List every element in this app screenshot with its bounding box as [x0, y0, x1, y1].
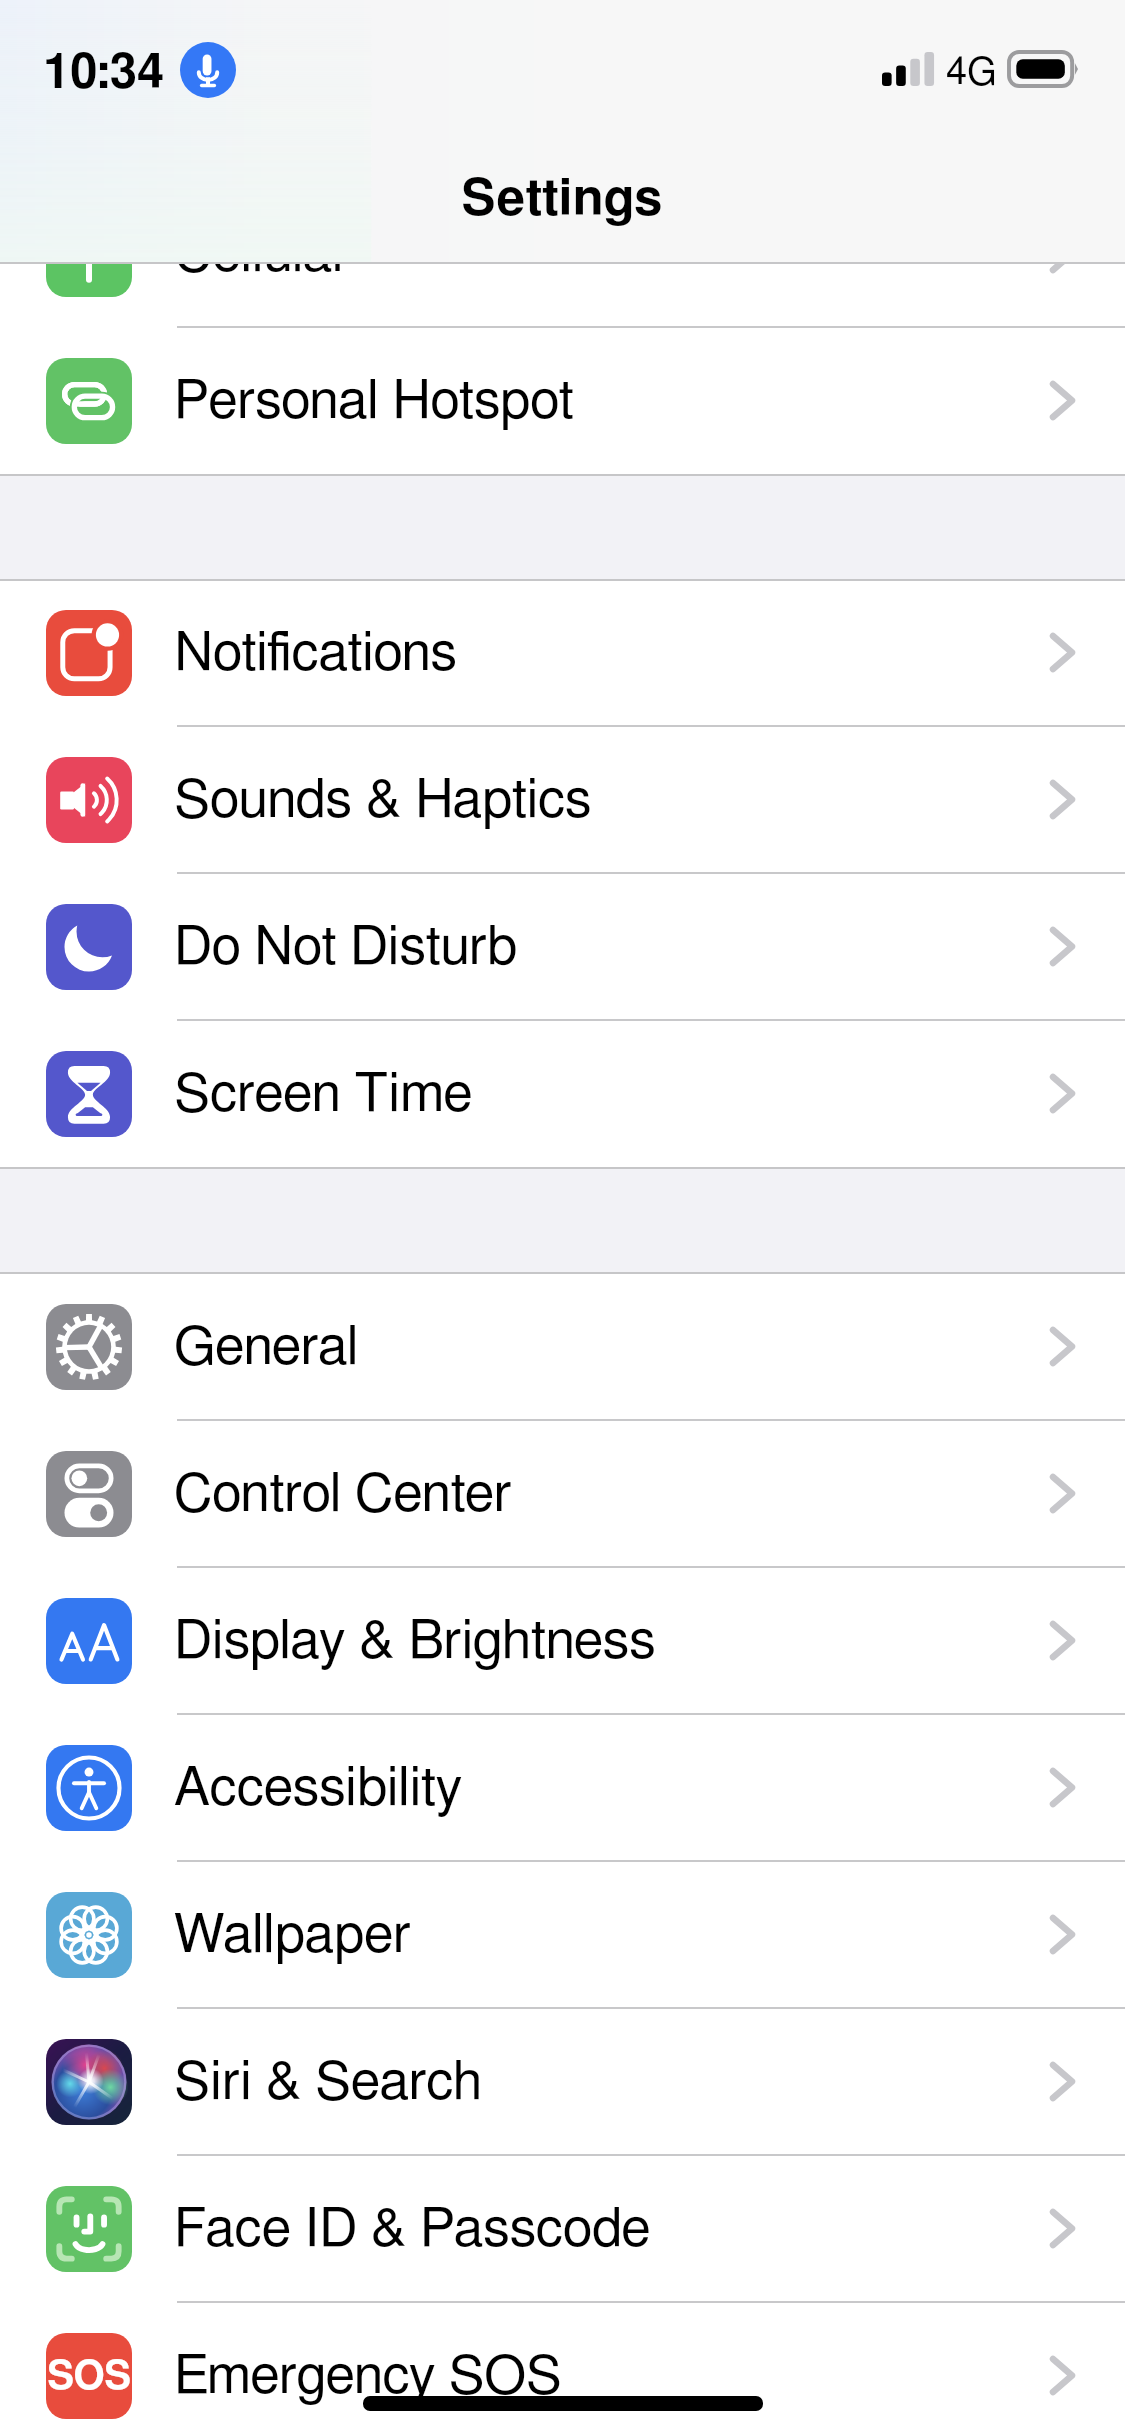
- staticText: Control Center: [174, 1468, 512, 1522]
- button[interactable]: Personal Hotspot: [0, 327, 1125, 474]
- staticText: Sounds & Haptics: [174, 774, 592, 828]
- staticText: Settings: [461, 174, 663, 225]
- button[interactable]: Accessibility: [0, 1714, 1125, 1861]
- staticText: Wallpaper: [174, 1909, 411, 1963]
- button[interactable]: Face ID & Passcode: [0, 2155, 1125, 2302]
- button[interactable]: Control Center: [0, 1420, 1125, 1567]
- staticText: SOS: [47, 2356, 132, 2396]
- button[interactable]: Display & Brightness: [0, 1567, 1125, 1714]
- staticText: Emergency SOS: [174, 2350, 562, 2404]
- button[interactable]: Wallpaper: [0, 1861, 1125, 2008]
- staticText: Screen Time: [174, 1068, 473, 1122]
- other: Microphone in use: [180, 42, 236, 98]
- staticText: Personal Hotspot: [174, 375, 574, 429]
- button[interactable]: Screen Time: [0, 1020, 1125, 1167]
- staticText: 10:34: [43, 49, 165, 98]
- button[interactable]: Sounds & Haptics: [0, 726, 1125, 873]
- button[interactable]: Cellular: [0, 180, 1125, 327]
- button[interactable]: Do Not Disturb: [0, 873, 1125, 1020]
- staticText: Do Not Disturb: [174, 921, 518, 975]
- staticText: Accessibility: [174, 1762, 462, 1816]
- button[interactable]: Notifications: [0, 579, 1125, 726]
- button[interactable]: Siri & Search: [0, 2008, 1125, 2155]
- staticText: Notifications: [174, 627, 457, 681]
- staticText: 4G: [946, 54, 997, 92]
- staticText: General: [174, 1321, 359, 1375]
- staticText: Siri & Search: [174, 2056, 483, 2110]
- button[interactable]: SOS: [0, 2302, 1125, 2436]
- button[interactable]: General: [0, 1273, 1125, 1420]
- staticText: Display & Brightness: [174, 1615, 656, 1669]
- staticText: Face ID & Passcode: [174, 2203, 651, 2257]
- staticText: Cellular: [174, 228, 351, 282]
